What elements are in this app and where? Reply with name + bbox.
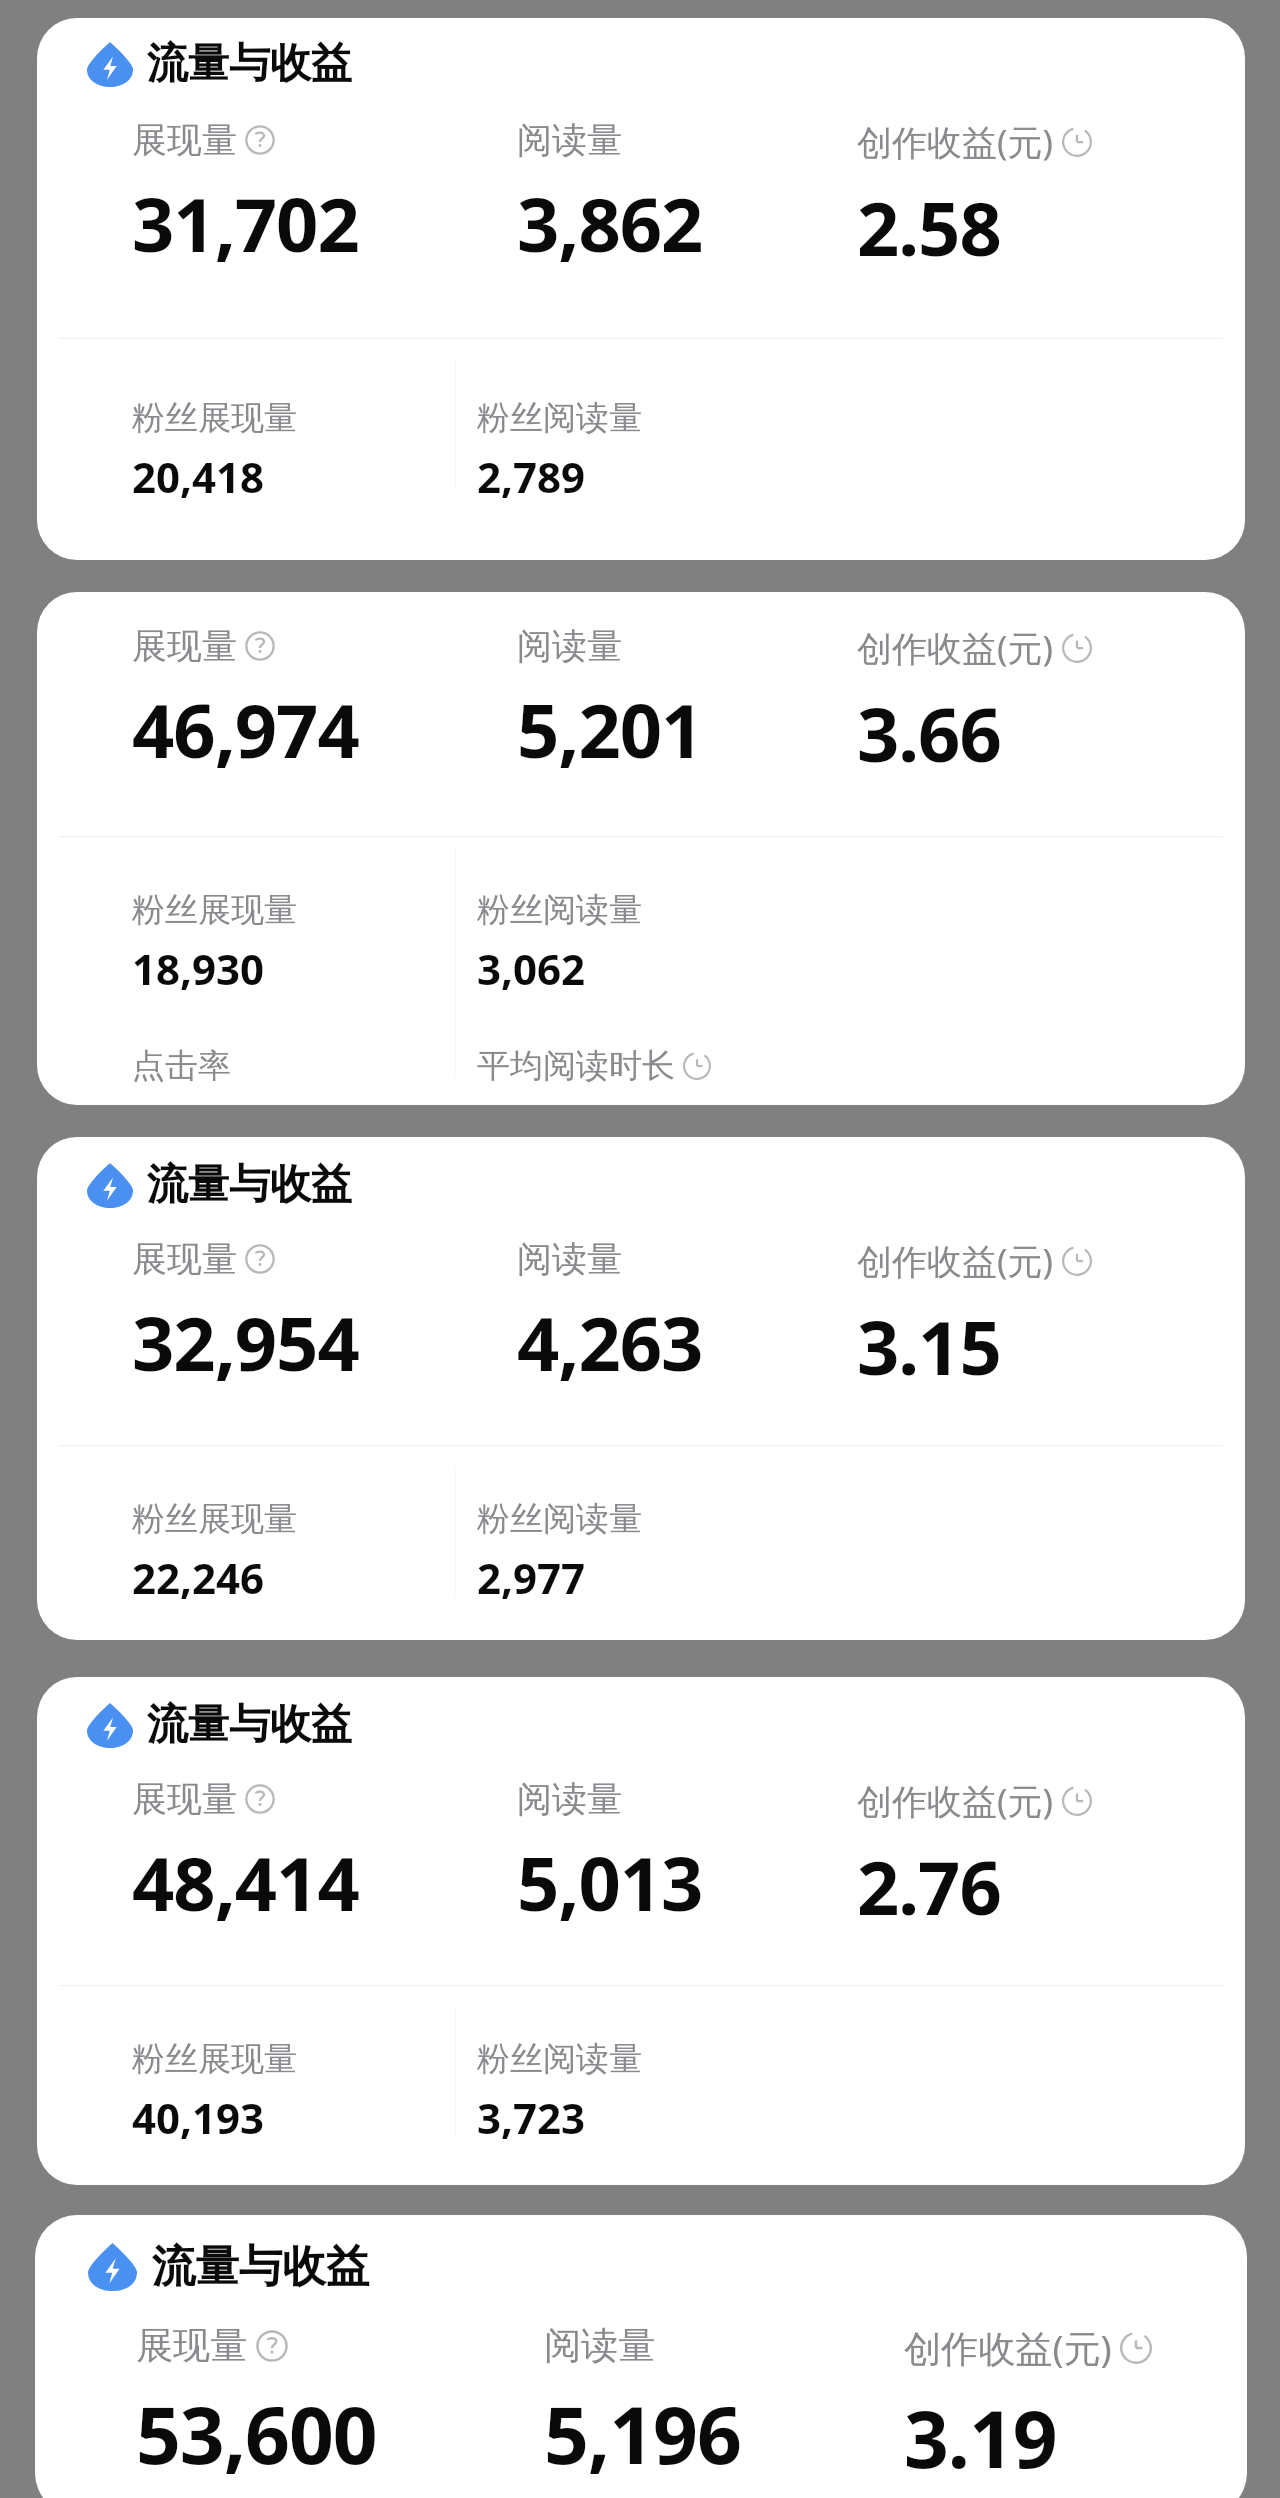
staticText: 创作收益(元) (857, 1237, 1054, 1285)
staticText: 阅读量 (517, 118, 622, 162)
staticText: 展现量 (132, 1237, 237, 1281)
staticText: 创作收益(元) (857, 1777, 1054, 1825)
staticText: 3.66 (857, 683, 1001, 784)
staticText: 粉丝展现量 (132, 397, 297, 439)
other: 流量与收益 (87, 41, 133, 87)
other: 流量与收益 (87, 1162, 133, 1208)
staticText: 粉丝阅读量 (477, 1498, 642, 1540)
staticText: 48,414 (132, 1832, 359, 1933)
button[interactable]: 流量与收益 (37, 18, 1245, 560)
staticText: 创作收益(元) (857, 624, 1054, 672)
staticText: 创作收益(元) (857, 118, 1054, 166)
staticText: 53,600 (136, 2380, 377, 2487)
staticText: 3,862 (517, 173, 703, 274)
staticText: 粉丝阅读量 (477, 2038, 642, 2080)
staticText: 31,702 (132, 173, 359, 274)
staticText: 流量与收益 (147, 1699, 352, 1751)
staticText: 2,789 (477, 448, 586, 505)
button[interactable]: 流量与收益 (87, 1159, 1245, 1211)
staticText: 5,013 (517, 1832, 703, 1933)
other: 说明 (245, 1244, 275, 1274)
staticText: 18,930 (132, 940, 265, 997)
staticText: 平均阅读时长 (477, 1045, 675, 1087)
button[interactable]: 流量与收益 (37, 1677, 1245, 2185)
staticText: 22,246 (132, 1549, 265, 1606)
other: 说明 (245, 125, 275, 155)
button[interactable]: 流量与收益 (87, 1699, 1245, 1751)
staticText: 阅读量 (517, 1237, 622, 1281)
staticText: 流量与收益 (147, 1159, 352, 1211)
button[interactable]: 流量与收益 (35, 2215, 1247, 2498)
other: 流量与收益 (88, 2242, 137, 2291)
staticText: 4,263 (517, 1292, 703, 1393)
other: 时间 (683, 1052, 711, 1080)
other: 时间 (1120, 2332, 1152, 2364)
staticText: 阅读量 (517, 1777, 622, 1821)
staticText: 2.58 (857, 177, 1001, 278)
other: 时间 (1062, 1246, 1092, 1276)
other: 说明 (245, 1784, 275, 1814)
staticText: 20,418 (132, 448, 265, 505)
staticText: 5,201 (517, 679, 703, 780)
staticText: 5,196 (544, 2380, 741, 2487)
other: 说明 (256, 2330, 288, 2362)
staticText: 展现量 (132, 1777, 237, 1821)
staticText: 粉丝展现量 (132, 889, 297, 931)
button[interactable]: 展现量 (37, 592, 1245, 1105)
other: 时间 (1062, 633, 1092, 663)
staticText: 展现量 (132, 118, 237, 162)
button[interactable]: 流量与收益 (37, 1137, 1245, 1640)
staticText: 粉丝阅读量 (477, 397, 642, 439)
staticText: 2.76 (857, 1836, 1001, 1937)
other: 说明 (245, 631, 275, 661)
staticText: 3,062 (477, 940, 586, 997)
staticText: 创作收益(元) (904, 2322, 1112, 2373)
button[interactable]: 流量与收益 (88, 2239, 1247, 2294)
staticText: 阅读量 (517, 624, 622, 668)
staticText: 展现量 (132, 624, 237, 668)
other: 流量与收益 (87, 1702, 133, 1748)
staticText: 3.15 (857, 1296, 1001, 1397)
staticText: 流量与收益 (147, 38, 352, 90)
other: 时间 (1062, 127, 1092, 157)
staticText: 粉丝展现量 (132, 2038, 297, 2080)
staticText: 32,954 (132, 1292, 359, 1393)
staticText: 阅读量 (544, 2322, 656, 2369)
button[interactable]: 流量与收益 (87, 38, 1245, 90)
staticText: 2,977 (477, 1549, 586, 1606)
staticText: 粉丝阅读量 (477, 889, 642, 931)
staticText: 40,193 (132, 2089, 265, 2146)
staticText: 展现量 (136, 2322, 248, 2369)
staticText: 流量与收益 (152, 2239, 370, 2294)
staticText: 46,974 (132, 679, 359, 780)
staticText: 3.19 (904, 2384, 1057, 2491)
staticText: 粉丝展现量 (132, 1498, 297, 1540)
other: 时间 (1062, 1786, 1092, 1816)
staticText: 点击率 (132, 1045, 231, 1087)
staticText: 3,723 (477, 2089, 586, 2146)
